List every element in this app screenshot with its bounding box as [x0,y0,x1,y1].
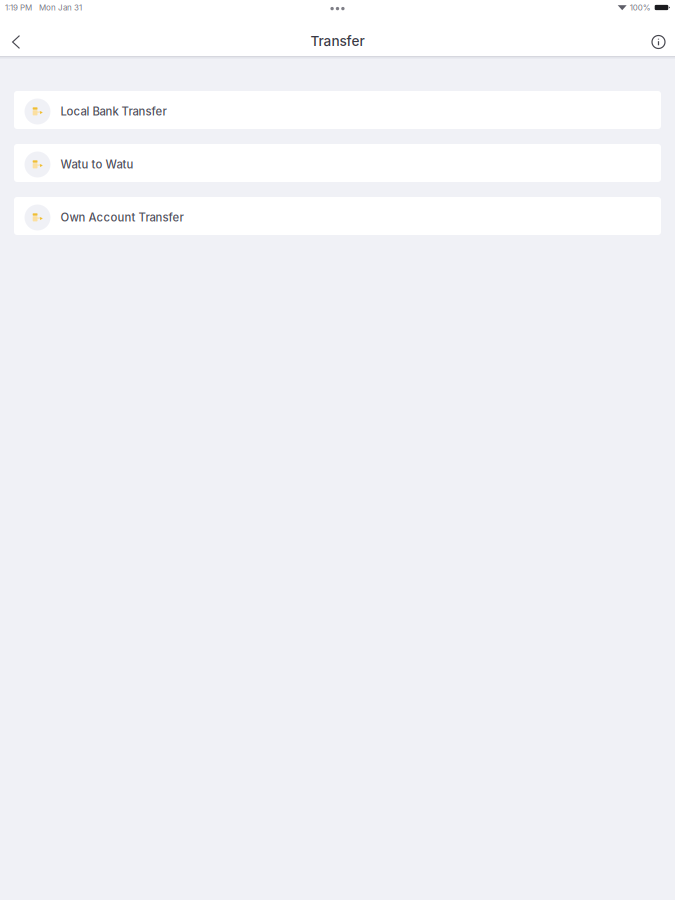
button[interactable]: Own Account Transfer [14,197,661,235]
button[interactable]: Local Bank Transfer [14,91,661,129]
button[interactable]: Back [0,24,32,60]
staticText: 1:19 PM [5,3,32,12]
staticText: Watu to Watu [60,158,133,171]
staticText: 100% [630,3,651,12]
staticText: Local Bank Transfer [60,105,166,118]
staticText: Mon Jan 31 [39,3,82,12]
staticText: Transfer [310,33,364,49]
button[interactable]: Watu to Watu [14,144,661,182]
staticText: Own Account Transfer [60,211,183,224]
button[interactable]: Information [642,24,674,60]
